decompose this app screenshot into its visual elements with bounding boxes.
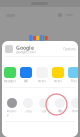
button[interactable]: Mark: [55, 98, 65, 113]
staticText: Messages: [4, 79, 16, 83]
button[interactable]: Messages: [4, 67, 16, 83]
staticText: Mark: [57, 109, 62, 113]
button[interactable]: List: [39, 98, 49, 113]
button[interactable]: Home: [71, 98, 80, 113]
staticText: Files: [71, 79, 77, 83]
staticText: Google: [16, 44, 34, 51]
button[interactable]: AirDrop: [7, 98, 17, 117]
staticText: google.com: [16, 49, 36, 54]
button[interactable]: Options: [63, 46, 76, 51]
button[interactable]: Copy: [23, 98, 33, 113]
staticText: Copy: [24, 109, 31, 113]
staticText: Notes: [54, 79, 62, 83]
staticText: Mail: [23, 79, 28, 83]
button[interactable]: Mail: [20, 67, 32, 83]
staticText: List: [42, 109, 46, 113]
button[interactable]: Notes: [52, 67, 64, 83]
staticText: Notes: [38, 79, 46, 83]
staticText: Home: [72, 109, 80, 113]
button[interactable]: Notes: [36, 67, 48, 83]
staticText: Options: [63, 46, 76, 51]
button[interactable]: Files: [68, 67, 80, 83]
staticText: AirDrop: [7, 109, 17, 117]
